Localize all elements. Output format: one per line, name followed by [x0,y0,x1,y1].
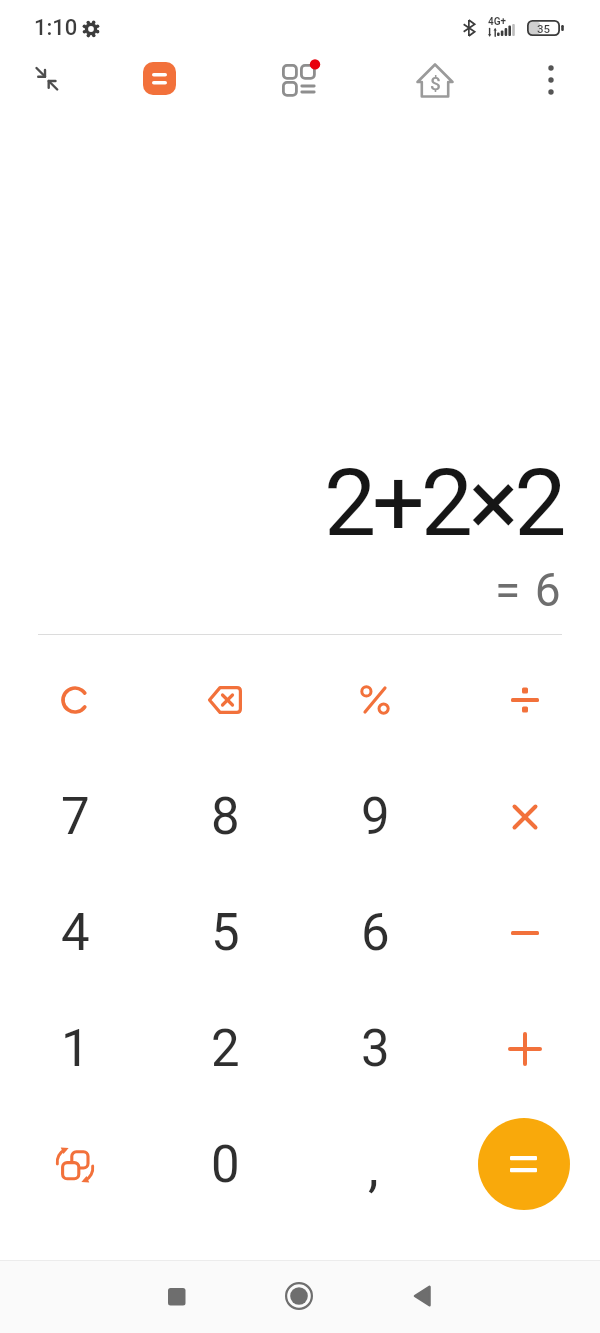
button[interactable]: 8 [150,759,300,875]
button[interactable] [300,642,450,758]
button[interactable] [0,642,150,758]
staticText: 7 [61,787,90,847]
button[interactable] [160,1280,194,1314]
button[interactable] [450,759,600,875]
button[interactable]: $ [413,60,457,102]
staticText: 0 [211,1135,240,1195]
button[interactable]: 4 [0,875,150,991]
staticText: 6 [361,903,390,963]
staticText: 3 [361,1019,390,1079]
staticText: 4 [61,903,90,963]
button[interactable] [282,1279,316,1313]
button[interactable] [143,62,176,95]
staticText: 1:10 [34,15,78,41]
button[interactable] [406,1279,440,1313]
staticText: 4G+ [488,16,507,28]
staticText: 1 [61,1019,90,1079]
button[interactable] [281,60,321,100]
button[interactable]: 1 [0,991,150,1107]
staticText: 2+2×2 [324,449,563,558]
button[interactable]: 0 [150,1107,300,1223]
staticText: , [368,1136,379,1199]
button[interactable]: 5 [150,875,300,991]
button[interactable]: , [300,1107,450,1223]
staticText: $ [430,72,441,94]
button[interactable]: 9 [300,759,450,875]
button[interactable] [0,1107,150,1223]
button[interactable] [150,642,300,758]
button[interactable]: 2 [150,991,300,1107]
button[interactable] [30,62,64,96]
staticText: 2 [211,1019,240,1079]
staticText: 5 [211,903,240,963]
button[interactable] [478,1118,570,1210]
button[interactable]: 6 [300,875,450,991]
staticText: = 6 [495,563,563,613]
button[interactable] [450,642,600,758]
button[interactable]: 7 [0,759,150,875]
button[interactable]: 3 [300,991,450,1107]
staticText: 35 [537,22,551,35]
button[interactable] [539,62,563,98]
staticText: 8 [211,787,240,847]
button[interactable] [450,991,600,1107]
button[interactable] [450,875,600,991]
staticText: 9 [361,787,390,847]
